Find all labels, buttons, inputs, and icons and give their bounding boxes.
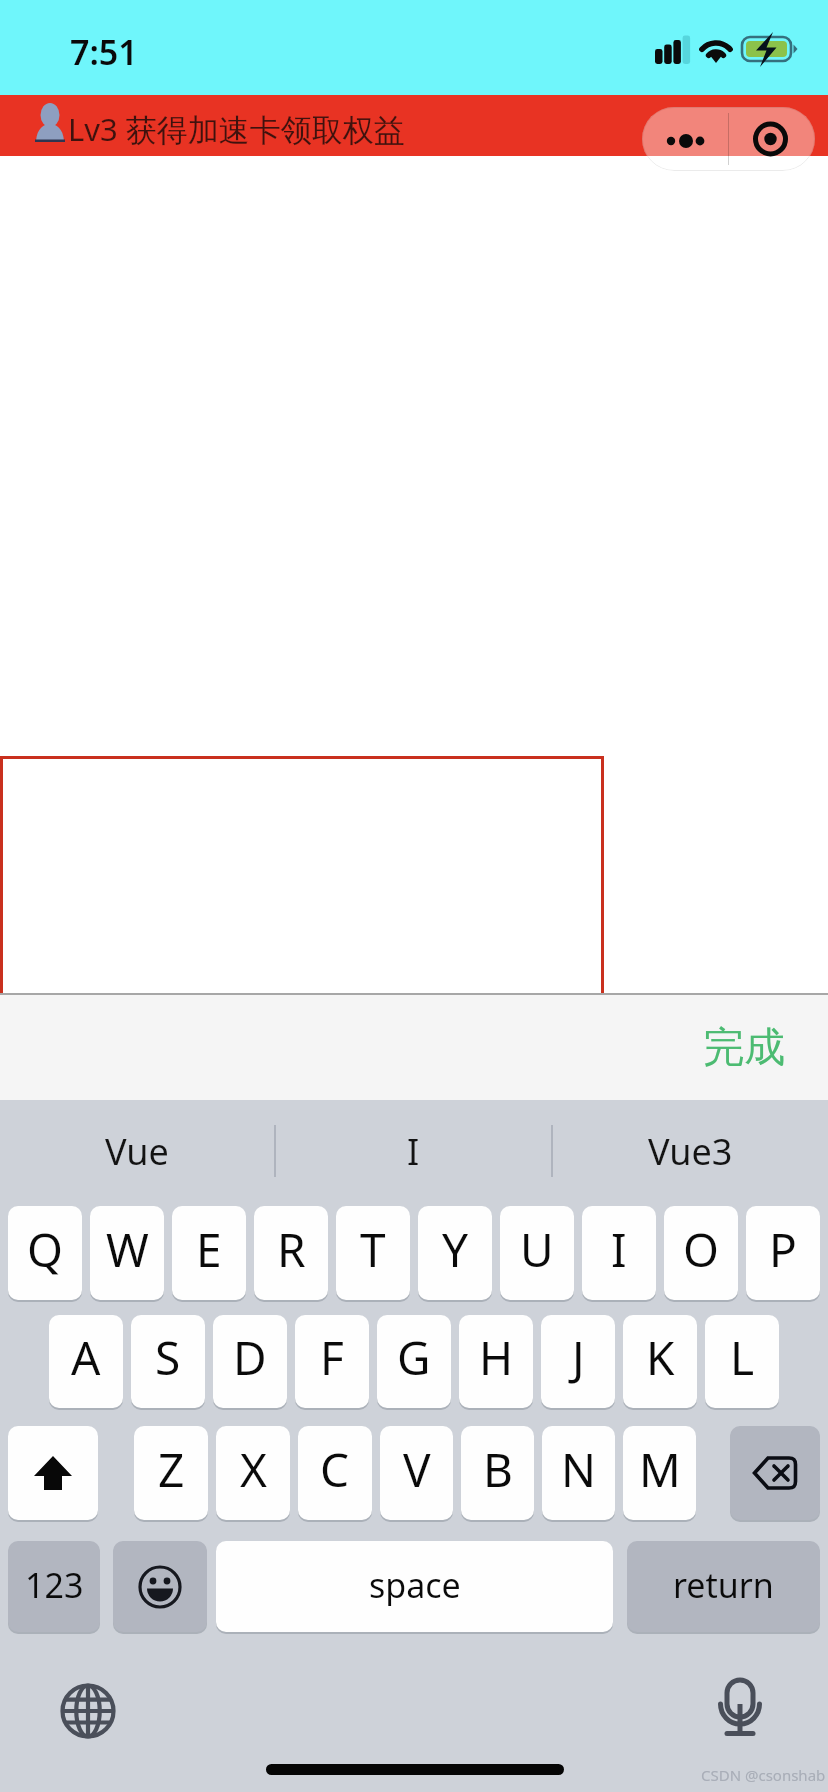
button[interactable]: Vue: [0, 1106, 274, 1196]
staticText: CSDN @csonshab: [701, 1765, 826, 1785]
button[interactable]: Q: [8, 1206, 82, 1300]
staticText: K: [646, 1326, 675, 1389]
button[interactable]: Change keyboard language: [59, 1682, 117, 1740]
button[interactable]: return: [627, 1541, 820, 1632]
staticText: J: [572, 1326, 585, 1389]
staticText: C: [320, 1438, 350, 1501]
button[interactable]: N: [542, 1426, 615, 1520]
button[interactable]: U: [500, 1206, 574, 1300]
button[interactable]: [0, 756, 604, 996]
button[interactable]: Lv3 获得加速卡领取权益: [0, 95, 828, 156]
button[interactable]: E: [172, 1206, 246, 1300]
button[interactable]: W: [90, 1206, 164, 1300]
staticText: 完成: [703, 1022, 785, 1074]
button[interactable]: L: [705, 1315, 779, 1408]
staticText: space: [369, 1562, 461, 1608]
button[interactable]: T: [336, 1206, 410, 1300]
staticText: return: [673, 1562, 774, 1608]
staticText: G: [397, 1326, 431, 1389]
button[interactable]: space: [216, 1541, 613, 1632]
button[interactable]: R: [254, 1206, 328, 1300]
staticText: V: [403, 1438, 431, 1501]
staticText: M: [639, 1438, 681, 1501]
staticText: Vue3: [648, 1127, 733, 1176]
staticText: T: [360, 1218, 386, 1281]
staticText: Y: [442, 1218, 469, 1281]
button[interactable]: K: [623, 1315, 697, 1408]
button[interactable]: P: [746, 1206, 820, 1300]
staticText: Z: [158, 1438, 185, 1501]
staticText: 7:51: [70, 29, 138, 75]
button[interactable]: M: [623, 1426, 696, 1520]
button[interactable]: Z: [134, 1426, 208, 1520]
staticText: A: [71, 1326, 101, 1389]
button[interactable]: Backspace: [730, 1426, 820, 1520]
staticText: I: [407, 1127, 420, 1176]
staticText: D: [233, 1326, 267, 1389]
button[interactable]: Shift: [8, 1426, 98, 1520]
staticText: L: [730, 1326, 755, 1389]
staticText: N: [561, 1438, 596, 1501]
button[interactable]: A: [49, 1315, 123, 1408]
button[interactable]: V: [380, 1426, 453, 1520]
button[interactable]: J: [541, 1315, 615, 1408]
button[interactable]: G: [377, 1315, 451, 1408]
button[interactable]: O: [664, 1206, 738, 1300]
staticText: B: [483, 1438, 513, 1501]
button[interactable]: 完成: [671, 1008, 828, 1088]
button[interactable]: Close mini program: [729, 107, 815, 171]
button[interactable]: 123: [8, 1541, 100, 1632]
staticText: X: [240, 1438, 267, 1501]
button[interactable]: Emoji keyboard: [113, 1541, 207, 1632]
button[interactable]: F: [295, 1315, 369, 1408]
button[interactable]: D: [213, 1315, 287, 1408]
staticText: Q: [27, 1218, 63, 1281]
button[interactable]: Dictation: [710, 1676, 770, 1740]
staticText: Lv3 获得加速卡领取权益: [68, 108, 405, 150]
button[interactable]: B: [461, 1426, 534, 1520]
button[interactable]: More options: [642, 107, 728, 171]
staticText: W: [106, 1218, 149, 1281]
button[interactable]: I: [276, 1106, 551, 1196]
staticText: R: [277, 1218, 306, 1281]
staticText: U: [520, 1218, 554, 1281]
button[interactable]: S: [131, 1315, 205, 1408]
staticText: P: [769, 1218, 797, 1281]
staticText: E: [196, 1218, 222, 1281]
button[interactable]: H: [459, 1315, 533, 1408]
button[interactable]: Y: [418, 1206, 492, 1300]
staticText: I: [611, 1218, 627, 1281]
staticText: 123: [25, 1562, 84, 1608]
button[interactable]: C: [298, 1426, 372, 1520]
staticText: H: [479, 1326, 514, 1389]
staticText: O: [683, 1218, 719, 1281]
button[interactable]: I: [582, 1206, 656, 1300]
staticText: Vue: [105, 1127, 169, 1176]
staticText: F: [320, 1326, 344, 1389]
staticText: S: [155, 1326, 181, 1389]
button[interactable]: X: [216, 1426, 290, 1520]
button[interactable]: Vue3: [553, 1106, 828, 1196]
